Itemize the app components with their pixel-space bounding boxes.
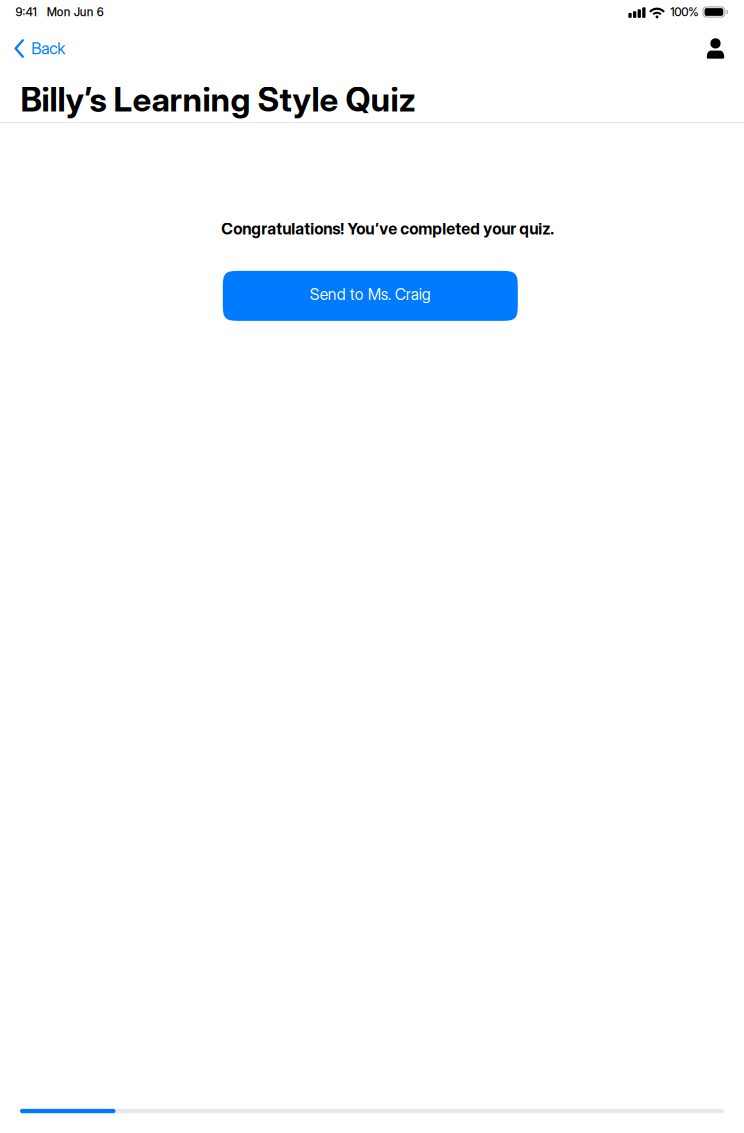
staticText: Mon Jun 6 <box>47 5 104 19</box>
staticText: Send to Ms. Craig <box>310 285 431 304</box>
staticText: 100% <box>670 5 698 19</box>
button[interactable]: Back <box>0 26 77 70</box>
staticText: Billy’s Learning Style Quiz <box>21 79 416 120</box>
button[interactable]: Send to Ms. Craig <box>223 271 518 321</box>
staticText: 9:41 <box>15 5 36 19</box>
staticText: Congratulations! You’ve completed your q… <box>221 219 554 238</box>
button[interactable]: Account <box>695 26 744 70</box>
staticText: Back <box>31 39 65 58</box>
